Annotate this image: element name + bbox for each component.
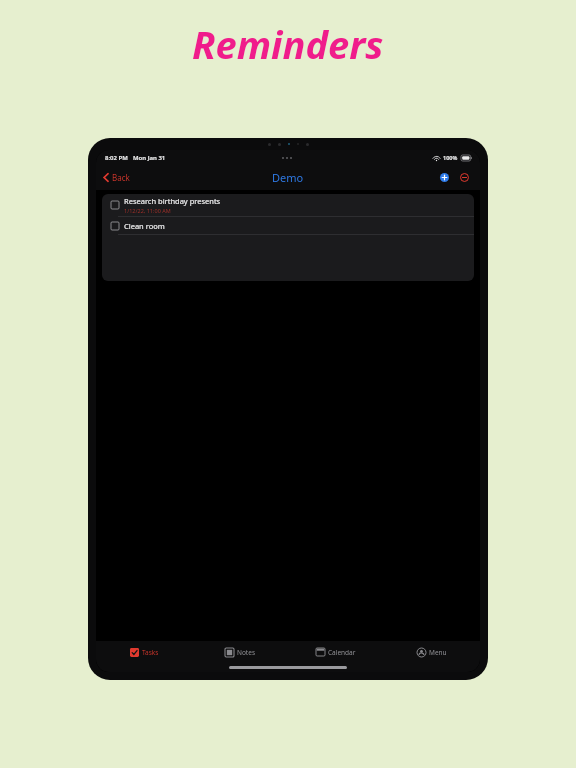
button[interactable]: Back [96, 165, 138, 190]
button[interactable]: Toggle Research birthday presents [102, 194, 474, 216]
button[interactable]: Toggle Clean room [108, 219, 122, 233]
button[interactable]: Calendar [288, 641, 384, 663]
staticText: Mon Jan 31 [133, 154, 166, 162]
staticText: Reminders [192, 18, 384, 70]
staticText: 1/12/22, 11:00 AM [124, 207, 171, 214]
button[interactable]: Toggle Research birthday presents [108, 198, 122, 212]
staticText: Clean room [124, 221, 165, 231]
staticText: Notes [237, 648, 255, 657]
button[interactable]: Notes [192, 641, 288, 663]
staticText: Calendar [328, 648, 356, 657]
button[interactable]: Toggle Clean room [102, 217, 474, 234]
staticText: 100% [443, 154, 458, 161]
staticText: Tasks [142, 648, 159, 657]
button[interactable]: Add reminder [437, 170, 452, 185]
button[interactable]: Menu [384, 641, 480, 663]
button[interactable]: Tasks [96, 641, 192, 663]
staticText: Back [112, 172, 130, 183]
button[interactable]: Delete [457, 170, 472, 185]
staticText: 8:02 PM [105, 154, 128, 162]
staticText: Research birthday presents [124, 196, 221, 206]
staticText: Menu [429, 648, 447, 657]
staticText: Demo [272, 170, 304, 185]
